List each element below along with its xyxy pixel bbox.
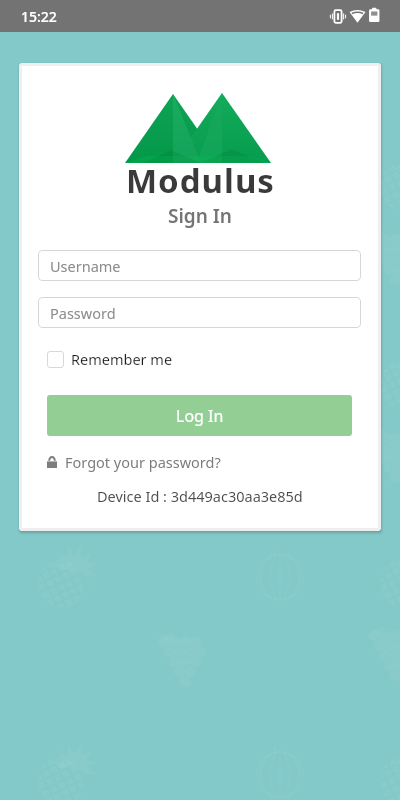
button[interactable]: Forgot your password? [47,451,221,473]
staticText: 15:22 [21,7,57,26]
button[interactable]: Remember me [47,348,177,370]
staticText: Device Id : 3d449ac30aa3e85d [97,486,303,506]
staticText: Sign In [168,203,232,229]
button[interactable]: Username [38,250,361,281]
staticText: Remember me [71,349,173,369]
button[interactable]: Log In [47,395,352,436]
staticText: Modulus [126,158,275,203]
staticText: Forgot your password? [65,452,221,472]
staticText: Password [50,303,116,323]
staticText: Username [50,256,121,276]
staticText: Log In [176,405,224,427]
button[interactable]: Password [38,297,361,328]
